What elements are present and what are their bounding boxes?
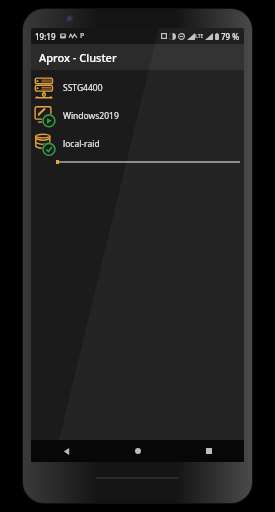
button[interactable]: Recent apps xyxy=(173,440,244,462)
staticText: P xyxy=(80,31,85,41)
staticText: SSTG4400 xyxy=(63,82,103,94)
button[interactable]: SSTG4400 xyxy=(31,74,244,102)
button[interactable]: Back xyxy=(31,440,102,462)
staticText: 79 % xyxy=(221,31,240,42)
button[interactable]: Home xyxy=(102,440,173,462)
staticText: 19:19 xyxy=(35,31,56,42)
button[interactable]: Windows2019 xyxy=(31,102,244,130)
staticText: Aprox - Cluster xyxy=(39,50,117,65)
staticText: LTE xyxy=(195,33,204,40)
staticText: Windows2019 xyxy=(63,110,119,122)
staticText: local-raid xyxy=(63,138,100,150)
button[interactable]: local-raid xyxy=(31,130,244,158)
